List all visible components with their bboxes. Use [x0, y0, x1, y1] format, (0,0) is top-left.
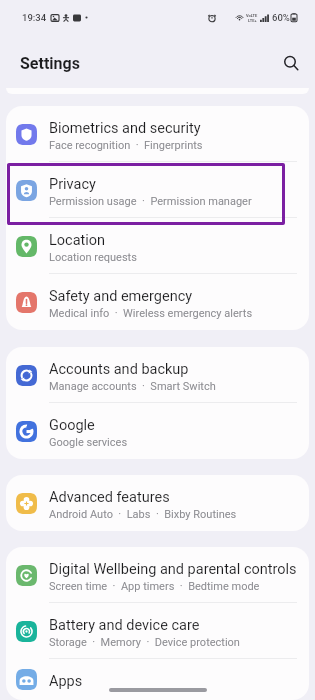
staticText: Advanced features	[49, 489, 170, 506]
button[interactable]: Digital Wellbeing and parental controls	[6, 547, 309, 603]
button[interactable]: Google	[6, 403, 309, 459]
staticText: Medical info · Wireless emergency alerts	[49, 307, 253, 320]
button[interactable]: Privacy	[6, 162, 309, 218]
button[interactable]: Biometrics and security	[6, 106, 309, 162]
button[interactable]: Safety and emergency	[6, 274, 309, 330]
staticText: Face recognition · Fingerprints	[49, 139, 203, 152]
staticText: Google	[49, 417, 95, 434]
button[interactable]: Location	[6, 218, 309, 274]
staticText: Privacy	[49, 176, 96, 193]
staticText: Google services	[49, 436, 128, 449]
button[interactable]: Search	[274, 46, 308, 80]
staticText: LTE+	[248, 18, 257, 23]
staticText: VoLTE	[246, 13, 258, 18]
button[interactable]: Battery and device care	[6, 603, 309, 659]
staticText: Settings	[20, 54, 80, 73]
staticText: Apps	[49, 673, 83, 690]
staticText: 19:34	[22, 12, 47, 23]
staticText: Screen time · App timers · Bedtime mode	[49, 580, 260, 593]
staticText: Biometrics and security	[49, 120, 201, 137]
staticText: Android Auto · Labs · Bixby Routines	[49, 508, 237, 521]
staticText: Digital Wellbeing and parental controls	[49, 561, 297, 578]
staticText: Location requests	[49, 251, 137, 264]
button[interactable]: Advanced features	[6, 475, 309, 531]
staticText: Location	[49, 232, 106, 249]
button[interactable]: Apps	[6, 659, 309, 700]
staticText: Safety and emergency	[49, 288, 193, 305]
staticText: 60%	[272, 12, 290, 23]
staticText: Battery and device care	[49, 617, 200, 634]
button[interactable]: Accounts and backup	[6, 347, 309, 403]
staticText: Permission usage · Permission manager	[49, 195, 252, 208]
staticText: Accounts and backup	[49, 361, 189, 378]
staticText: Storage · Memory · Device protection	[49, 636, 240, 649]
staticText: Manage accounts · Smart Switch	[49, 380, 216, 393]
